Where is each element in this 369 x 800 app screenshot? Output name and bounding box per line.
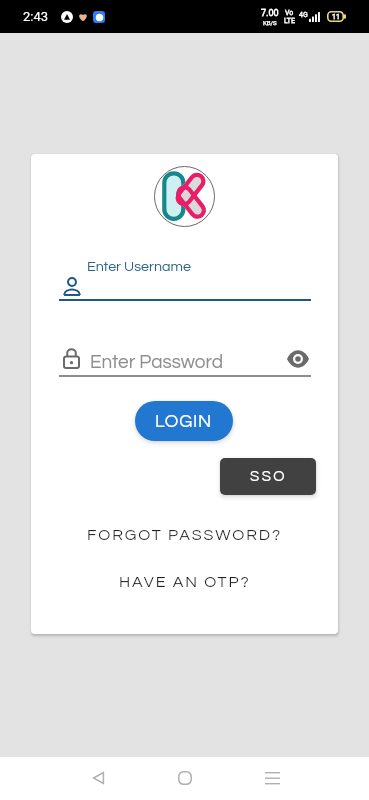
button[interactable]: Show password [287,351,309,367]
staticText: LTE [284,17,295,25]
button[interactable]: Back [78,757,119,798]
staticText: 11 [332,13,340,21]
staticText: 4G [299,11,308,19]
staticText: KB/S [263,19,277,26]
staticText: LOGIN [155,412,213,431]
button[interactable]: LOGIN [135,401,233,441]
button[interactable]: Recent apps [252,757,293,798]
staticText: 7.00 [261,8,279,19]
staticText: SSO [250,469,287,484]
button[interactable]: Home [164,757,205,798]
staticText: Vo [285,9,294,17]
staticText: HAVE AN OTP? [119,574,251,590]
staticText: FORGOT PASSWORD? [87,527,283,543]
button[interactable]: FORGOT PASSWORD? [31,525,338,545]
button[interactable]: SSO [220,458,316,495]
staticText: 2:43 [23,9,49,24]
button[interactable]: HAVE AN OTP? [31,572,338,592]
staticText: Enter Username [87,259,191,274]
staticText: Enter Password [90,352,224,372]
